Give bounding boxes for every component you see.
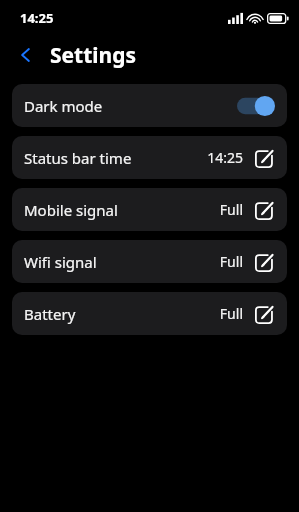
button[interactable]: Edit Battery [252,302,276,326]
button[interactable]: Toggle dark mode [237,95,275,117]
button[interactable]: Edit Status bar time [252,146,276,170]
staticText: Full [219,200,243,219]
staticText: 14:25 [207,148,243,167]
staticText: Settings [50,41,137,70]
staticText: 14:25 [20,9,54,27]
button[interactable]: Status bar time [12,136,287,179]
staticText: Mobile signal [24,200,219,220]
button[interactable]: Battery [12,292,287,335]
staticText: Full [219,304,243,323]
staticText: Dark mode [24,96,237,116]
button[interactable]: Edit Wifi signal [252,250,276,274]
button[interactable]: Dark mode [12,84,287,127]
staticText: Status bar time [24,148,207,168]
button[interactable]: Back [10,39,42,71]
staticText: Wifi signal [24,252,219,272]
staticText: Battery [24,304,219,324]
button[interactable]: Mobile signal [12,188,287,231]
button[interactable]: Wifi signal [12,240,287,283]
button[interactable]: Edit Mobile signal [252,198,276,222]
staticText: Full [219,252,243,271]
